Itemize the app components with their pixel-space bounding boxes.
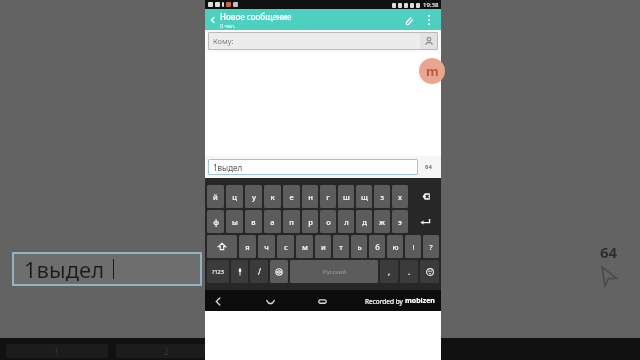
staticText: т xyxy=(339,242,343,252)
button[interactable]: ы xyxy=(226,210,243,233)
button[interactable]: Back xyxy=(209,292,227,310)
button[interactable]: у xyxy=(245,185,262,208)
staticText: э xyxy=(398,217,402,227)
button[interactable]: й xyxy=(207,185,224,208)
button[interactable]: Shift xyxy=(207,235,237,258)
staticText: Recorded by xyxy=(365,297,405,306)
button[interactable]: ж xyxy=(374,210,390,233)
button[interactable]: Send xyxy=(418,159,438,175)
button[interactable]: т xyxy=(333,235,349,258)
button[interactable]: г xyxy=(320,185,336,208)
staticText: а xyxy=(270,217,275,227)
button[interactable]: , xyxy=(380,260,398,283)
button[interactable]: Voice input xyxy=(231,260,248,283)
button[interactable]: л xyxy=(338,210,354,233)
staticText: 0 чел. xyxy=(220,22,236,29)
staticText: щ xyxy=(361,192,368,202)
button[interactable]: More options xyxy=(421,12,437,28)
staticText: 64 xyxy=(600,242,618,262)
button[interactable]: р xyxy=(302,210,318,233)
button[interactable]: я xyxy=(239,235,256,258)
button[interactable]: е xyxy=(283,185,300,208)
staticText: н xyxy=(308,192,313,202)
button[interactable]: Enter xyxy=(410,210,439,233)
button[interactable]: д xyxy=(356,210,372,233)
button[interactable]: 1выдел xyxy=(208,159,418,175)
button[interactable]: Recents xyxy=(313,292,331,310)
staticText: у xyxy=(252,192,256,202)
button[interactable]: / xyxy=(250,260,268,283)
button[interactable]: 1выдел xyxy=(12,252,202,286)
staticText: / xyxy=(258,266,261,277)
staticText: м xyxy=(302,242,308,252)
button[interactable]: . xyxy=(400,260,418,283)
button[interactable]: Backspace xyxy=(410,185,439,208)
button[interactable]: ! xyxy=(405,235,421,258)
staticText: ?123 xyxy=(212,268,224,275)
staticText: 1выдел xyxy=(24,254,105,284)
button[interactable]: х xyxy=(392,185,408,208)
staticText: и xyxy=(321,242,326,252)
button[interactable]: ь xyxy=(351,235,367,258)
staticText: 2 xyxy=(164,345,170,357)
button[interactable]: Change language xyxy=(270,260,288,283)
button[interactable]: э xyxy=(392,210,408,233)
button[interactable]: ю xyxy=(387,235,403,258)
staticText: 19:38 xyxy=(423,1,439,9)
staticText: m xyxy=(426,62,439,80)
button[interactable]: ш xyxy=(338,185,354,208)
staticText: ч xyxy=(264,242,269,252)
staticText: й xyxy=(213,192,218,202)
button[interactable]: Home xyxy=(261,292,279,310)
staticText: я xyxy=(245,242,250,252)
staticText: ф xyxy=(213,217,219,227)
button[interactable]: ? xyxy=(423,235,439,258)
staticText: к xyxy=(270,192,275,202)
button[interactable]: Emoji xyxy=(420,260,439,283)
button[interactable]: ф xyxy=(207,210,224,233)
staticText: 1выдел xyxy=(213,162,243,173)
button[interactable]: а xyxy=(264,210,281,233)
staticText: б xyxy=(375,242,380,252)
staticText: г xyxy=(326,192,330,202)
button[interactable]: н xyxy=(302,185,318,208)
staticText: , xyxy=(388,266,391,277)
button[interactable]: и xyxy=(315,235,331,258)
button[interactable]: щ xyxy=(356,185,372,208)
button[interactable]: Contact avatar xyxy=(419,58,445,84)
staticText: ж xyxy=(379,217,385,227)
button[interactable]: з xyxy=(374,185,390,208)
staticText: ю xyxy=(392,242,399,252)
button[interactable]: Back xyxy=(205,12,221,28)
button[interactable]: ц xyxy=(226,185,243,208)
button[interactable]: 2 xyxy=(116,344,218,358)
staticText: 64 xyxy=(425,163,432,171)
staticText: д xyxy=(362,217,367,227)
staticText: Кому: xyxy=(213,36,234,46)
staticText: с xyxy=(284,242,288,252)
button[interactable]: Кому: xyxy=(208,32,438,50)
button[interactable]: Русский xyxy=(290,260,378,283)
staticText: в xyxy=(251,217,256,227)
button[interactable]: ч xyxy=(258,235,275,258)
button[interactable]: б xyxy=(369,235,385,258)
button[interactable]: м xyxy=(296,235,313,258)
staticText: ц xyxy=(232,192,237,202)
button[interactable]: ?123 xyxy=(207,260,229,283)
button[interactable]: к xyxy=(264,185,281,208)
button[interactable]: в xyxy=(245,210,262,233)
button[interactable]: Pick contact xyxy=(420,32,438,50)
staticText: Новое сообщение xyxy=(220,11,292,22)
button[interactable]: п xyxy=(283,210,300,233)
button[interactable]: Attach xyxy=(399,11,417,29)
button[interactable]: о xyxy=(320,210,336,233)
staticText: Русский xyxy=(323,268,346,276)
staticText: ? xyxy=(429,242,433,252)
button[interactable]: с xyxy=(277,235,294,258)
staticText: е xyxy=(289,192,294,202)
staticText: 1 xyxy=(54,345,60,357)
